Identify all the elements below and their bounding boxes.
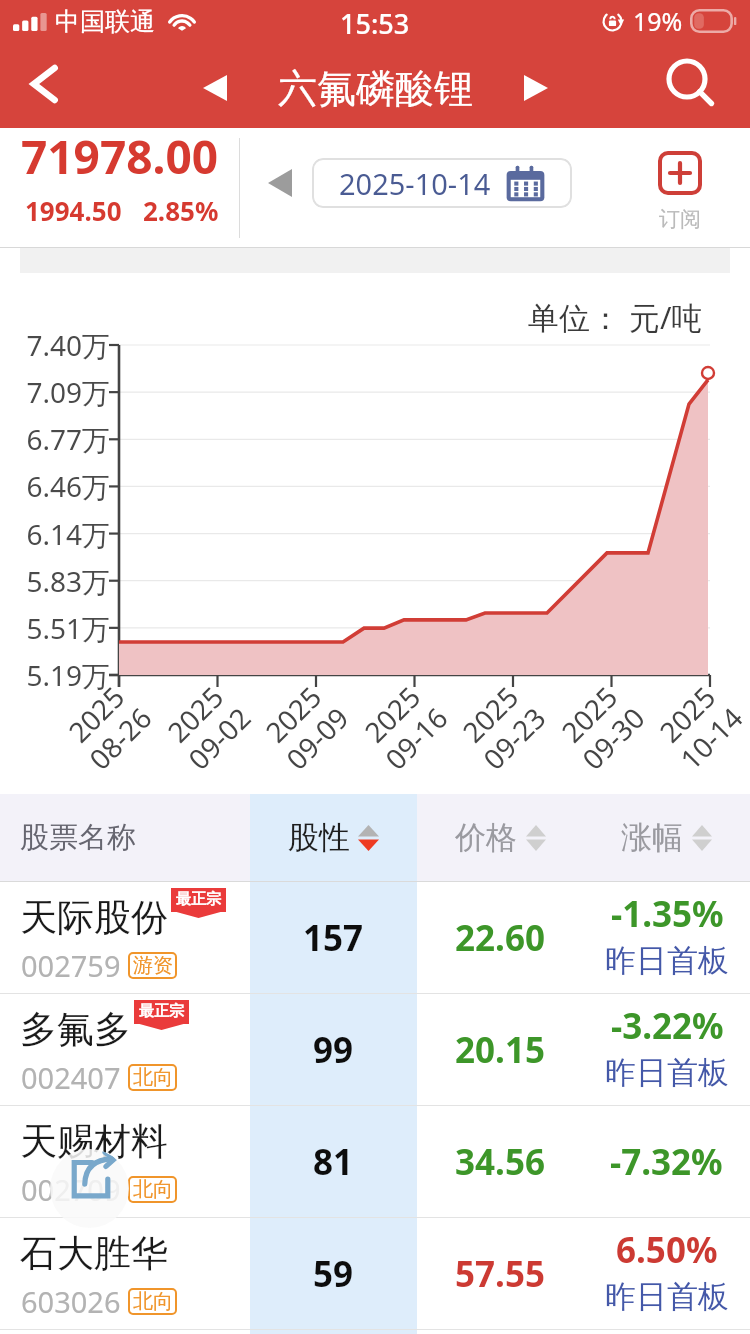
button[interactable]: 股票名称: [0, 794, 250, 881]
staticText: 157: [303, 914, 364, 962]
button[interactable]: 天际股份: [0, 882, 750, 993]
staticText: -1.35%: [611, 890, 724, 938]
staticText: 6.14万: [8, 515, 110, 553]
staticText: 价格: [455, 818, 517, 857]
staticText: 81: [313, 1138, 354, 1186]
staticText: 20.15: [455, 1026, 545, 1074]
staticText: 5.19万: [8, 656, 110, 694]
staticText: 15:53: [340, 5, 410, 42]
staticText: 2025 09-16: [352, 674, 455, 778]
button[interactable]: 价格: [417, 794, 583, 881]
button[interactable]: 订阅: [636, 151, 724, 232]
staticText: 002759: [21, 946, 121, 985]
staticText: 19%: [633, 4, 683, 38]
staticText: 22.60: [455, 914, 545, 962]
staticText: 最正宗: [176, 890, 221, 909]
staticText: 5.83万: [8, 562, 110, 600]
staticText: 7.09万: [8, 373, 110, 411]
staticText: 石大胜华: [20, 1230, 168, 1277]
staticText: 股性: [288, 818, 350, 857]
button[interactable]: 天赐材料: [0, 1106, 750, 1217]
staticText: 订阅: [659, 206, 701, 232]
button[interactable]: 下一个: [509, 53, 563, 123]
staticText: 北向: [133, 1177, 173, 1202]
staticText: 6.77万: [8, 420, 110, 458]
button[interactable]: 2025-10-14: [312, 158, 572, 208]
button[interactable]: 石大胜华: [0, 1218, 750, 1329]
staticText: 2025 09-30: [549, 674, 652, 778]
staticText: 34.56: [455, 1138, 545, 1186]
staticText: 2025-10-14: [339, 164, 491, 203]
staticText: 2025 09-02: [155, 674, 258, 778]
staticText: 6.50%: [616, 1226, 718, 1274]
staticText: 单位： 元/吨: [528, 296, 703, 338]
staticText: 多氟多: [20, 1006, 131, 1053]
staticText: 1994.50: [25, 193, 122, 228]
staticText: 昨日首板: [605, 1277, 729, 1316]
staticText: 99: [313, 1026, 354, 1074]
staticText: 最正宗: [139, 1002, 184, 1021]
staticText: -3.22%: [611, 1002, 724, 1050]
staticText: -7.32%: [610, 1138, 723, 1186]
staticText: 天际股份: [20, 894, 168, 941]
staticText: 6.46万: [8, 467, 110, 505]
staticText: 71978.00: [21, 125, 219, 188]
staticText: 2025 08-26: [56, 674, 159, 778]
staticText: 2025 10-14: [647, 674, 750, 778]
button[interactable]: 前一天: [252, 155, 308, 211]
staticText: 中国联通: [55, 6, 155, 37]
button[interactable]: 分享: [50, 1149, 129, 1228]
staticText: 昨日首板: [605, 1053, 729, 1092]
staticText: 六氟磷酸锂: [278, 64, 473, 113]
staticText: 北向: [133, 1065, 173, 1090]
staticText: 2025 09-23: [450, 674, 553, 778]
button[interactable]: 股性: [250, 794, 417, 881]
button[interactable]: 返回: [8, 48, 80, 120]
staticText: 游资: [133, 953, 173, 978]
staticText: 2.85%: [143, 193, 219, 228]
staticText: 7.40万: [8, 326, 110, 364]
staticText: 002407: [21, 1058, 121, 1097]
staticText: 002709: [21, 1170, 121, 1209]
staticText: 603026: [21, 1282, 121, 1321]
button[interactable]: 搜索: [656, 48, 728, 120]
staticText: 59: [313, 1250, 354, 1298]
staticText: 昨日首板: [605, 941, 729, 980]
staticText: 北向: [133, 1289, 173, 1314]
staticText: 5.51万: [8, 609, 110, 647]
staticText: 股票名称: [20, 819, 136, 856]
button[interactable]: 上一个: [188, 53, 242, 123]
button[interactable]: 多氟多: [0, 994, 750, 1105]
staticText: 2025 09-09: [253, 674, 356, 778]
button[interactable]: 多氟多: [0, 1330, 750, 1334]
staticText: 57.55: [455, 1250, 545, 1298]
button[interactable]: 涨幅: [583, 794, 750, 881]
staticText: 涨幅: [621, 818, 683, 857]
staticText: 天赐材料: [20, 1118, 168, 1165]
